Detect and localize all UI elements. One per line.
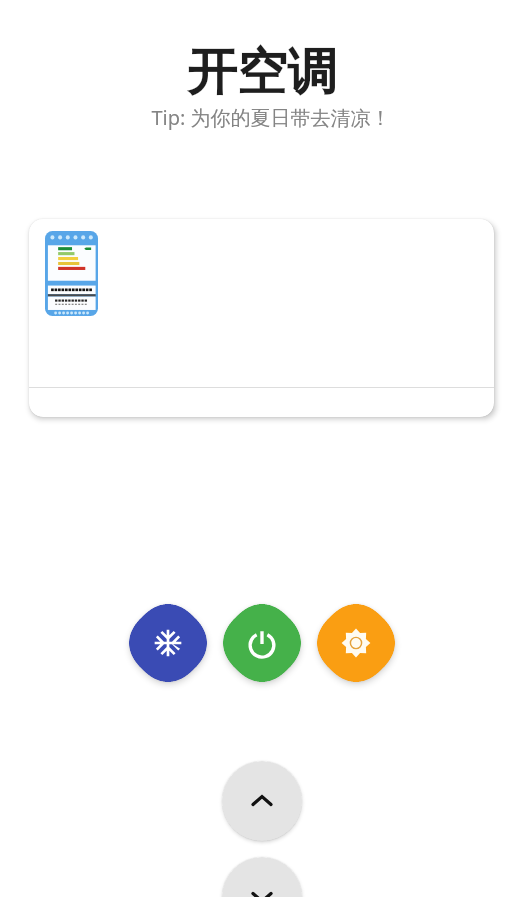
button[interactable]: Cool mode — [129, 604, 207, 682]
staticText: 开空调 — [187, 41, 337, 104]
button[interactable]: Heat mode — [317, 604, 395, 682]
staticText: Tip: 为你的夏日带去清凉！ — [151, 104, 391, 131]
button[interactable]: Decrease — [222, 857, 302, 897]
button[interactable] — [29, 219, 494, 417]
button[interactable]: Increase — [222, 761, 302, 841]
button[interactable]: Power — [223, 604, 301, 682]
